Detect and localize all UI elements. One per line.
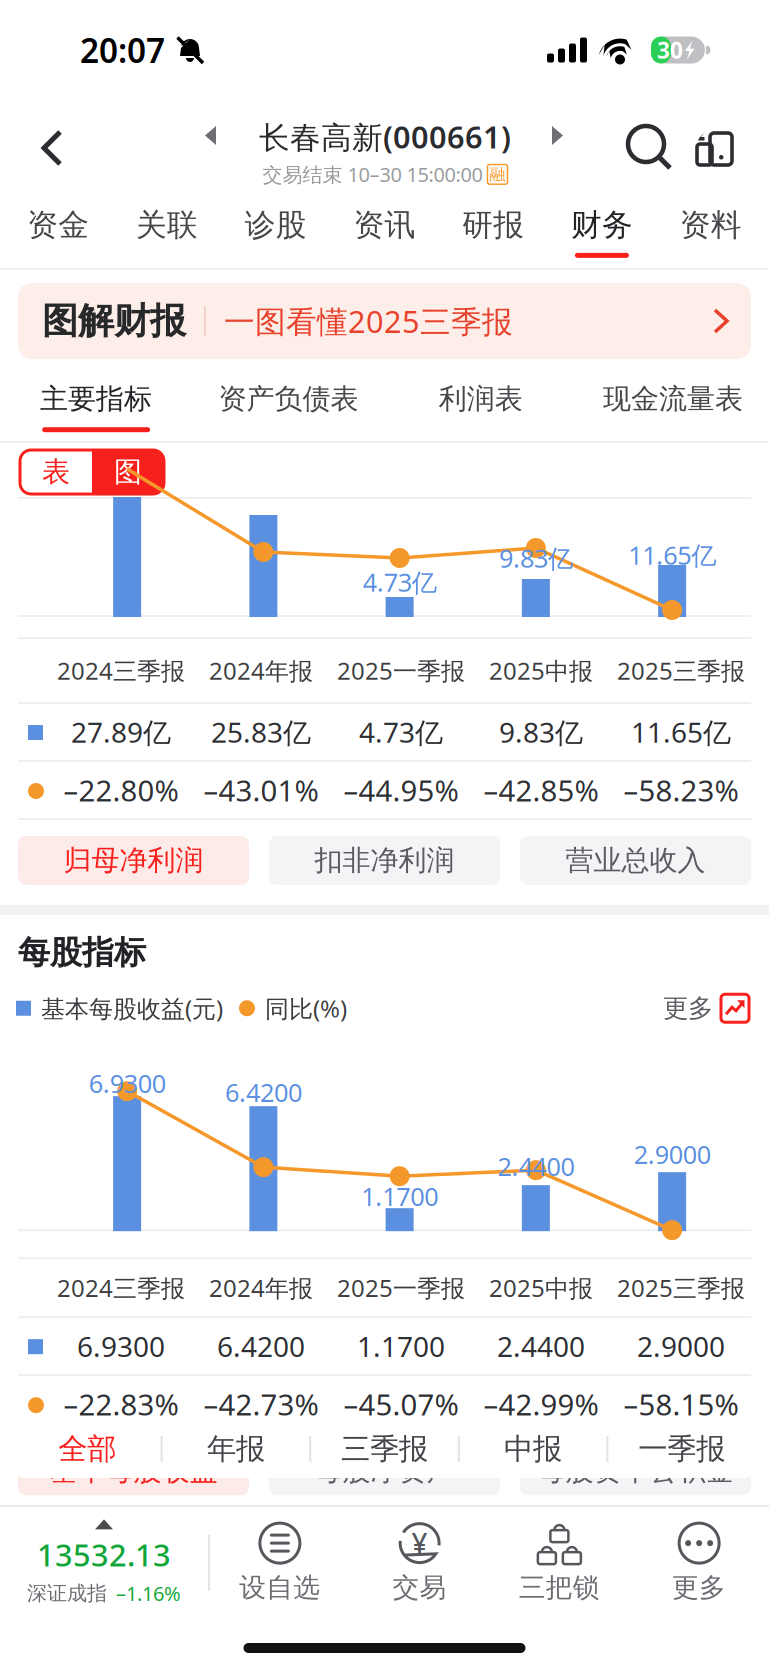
staticText: 2024年报: [209, 655, 313, 686]
staticText: 2024年报: [209, 1272, 313, 1304]
staticText: 1.1700: [361, 1179, 438, 1213]
staticText: 每股资本公积金: [537, 1453, 733, 1488]
staticText: 2.9000: [634, 1137, 711, 1171]
staticText: 27.89亿: [71, 713, 171, 751]
staticText: 财务: [571, 206, 633, 244]
button[interactable]: 三季报: [311, 1420, 458, 1478]
staticText: 扣非净利润: [314, 843, 454, 878]
staticText: 一图看懂2025三季报: [224, 301, 513, 341]
staticText: 年报: [207, 1431, 265, 1467]
button[interactable]: 更多: [629, 1507, 769, 1619]
staticText: –42.99%: [483, 1385, 598, 1424]
button[interactable]: 基本每股收益: [18, 1446, 249, 1495]
button[interactable]: 资金: [4, 203, 113, 261]
staticText: –45.07%: [343, 1385, 458, 1424]
staticText: 更多: [672, 1571, 726, 1604]
staticText: –58.15%: [623, 1385, 738, 1424]
staticText: 资料: [680, 206, 742, 244]
staticText: 6.9300: [89, 1066, 166, 1100]
button[interactable]: Previous stock: [189, 100, 233, 171]
staticText: –22.83%: [63, 1385, 178, 1424]
staticText: ¥: [412, 1524, 428, 1562]
staticText: 资产负债表: [218, 382, 358, 416]
button[interactable]: 营业总收入: [520, 836, 751, 885]
staticText: 2025三季报: [617, 1272, 745, 1304]
staticText: 利润表: [439, 382, 523, 416]
button[interactable]: 三把锁: [489, 1507, 629, 1619]
button[interactable]: 年报: [163, 1420, 309, 1478]
staticText: 6.4200: [225, 1075, 302, 1109]
staticText: 一季报: [638, 1431, 725, 1467]
staticText: 6.4200: [217, 1328, 305, 1365]
staticText: 研报: [462, 206, 524, 244]
button[interactable]: 现金流量表: [577, 377, 769, 437]
button[interactable]: Layout options: [683, 100, 747, 196]
staticText: 现金流量表: [603, 382, 743, 416]
staticText: 2025中报: [489, 655, 593, 686]
button[interactable]: Search: [612, 100, 688, 196]
staticText: 三季报: [341, 1431, 428, 1467]
staticText: –42.73%: [203, 1385, 318, 1424]
staticText: 融: [489, 164, 505, 184]
staticText: 归母净利润: [63, 843, 203, 878]
button[interactable]: 表: [20, 450, 92, 494]
staticText: 6.9300: [77, 1328, 165, 1365]
button[interactable]: 关联: [113, 203, 221, 261]
staticText: 4.73亿: [363, 565, 437, 599]
staticText: 11.65亿: [631, 713, 731, 751]
button[interactable]: 一季报: [608, 1420, 755, 1478]
staticText: 全部: [58, 1431, 116, 1467]
staticText: 2025中报: [489, 1272, 593, 1304]
staticText: 交易: [393, 1571, 447, 1604]
staticText: 9.83亿: [499, 541, 573, 575]
button[interactable]: 利润表: [384, 377, 577, 437]
staticText: 深证成指: [27, 1581, 107, 1606]
staticText: 设自选: [239, 1571, 320, 1604]
staticText: 交易结束 10–30 15:00:00: [262, 161, 482, 188]
button[interactable]: 设自选: [210, 1507, 350, 1619]
button[interactable]: 每股资本公积金: [520, 1446, 751, 1495]
button[interactable]: 图解财报: [0, 270, 769, 373]
button[interactable]: 资料: [656, 203, 765, 261]
staticText: 每股指标: [18, 933, 146, 972]
staticText: 基本每股收益: [49, 1453, 217, 1488]
staticText: 2025三季报: [617, 655, 745, 686]
staticText: 营业总收入: [565, 843, 705, 878]
button[interactable]: 资讯: [330, 203, 439, 261]
button[interactable]: ¥: [350, 1507, 489, 1619]
button[interactable]: 图: [92, 450, 164, 494]
button[interactable]: 更多: [663, 993, 749, 1024]
staticText: 20:07: [80, 28, 165, 72]
button[interactable]: 扣非净利润: [269, 836, 500, 885]
staticText: 2025一季报: [337, 655, 465, 686]
button[interactable]: 中报: [460, 1420, 606, 1478]
staticText: –44.95%: [343, 770, 458, 809]
button[interactable]: Back: [20, 100, 84, 196]
staticText: 4.73亿: [359, 713, 443, 751]
button[interactable]: 主要指标: [0, 377, 192, 437]
button[interactable]: 每股净资产: [269, 1446, 500, 1495]
button[interactable]: 研报: [439, 203, 548, 261]
staticText: –1.16%: [116, 1580, 181, 1607]
staticText: 13532.13: [37, 1534, 171, 1575]
staticText: 2025一季报: [337, 1272, 465, 1304]
staticText: 25.83亿: [211, 713, 311, 751]
button[interactable]: 归母净利润: [18, 836, 249, 885]
staticText: 同比(%): [265, 992, 347, 1024]
staticText: 图: [114, 455, 142, 489]
button[interactable]: 诊股: [221, 203, 330, 261]
staticText: 每股净资产: [314, 1453, 454, 1488]
staticText: 诊股: [245, 206, 307, 244]
button[interactable]: 财务: [548, 203, 656, 261]
button[interactable]: 资产负债表: [192, 377, 384, 437]
staticText: –58.23%: [623, 770, 738, 809]
button[interactable]: 全部: [14, 1420, 161, 1478]
staticText: 中报: [504, 1431, 562, 1467]
staticText: 资讯: [353, 206, 415, 244]
button[interactable]: Next stock: [536, 100, 580, 171]
staticText: 长春高新(000661): [259, 116, 511, 157]
staticText: 2024三季报: [57, 655, 185, 686]
staticText: 11.65亿: [628, 538, 716, 572]
button[interactable]: 13532.13: [0, 1507, 208, 1619]
staticText: 2.4400: [497, 1149, 574, 1183]
